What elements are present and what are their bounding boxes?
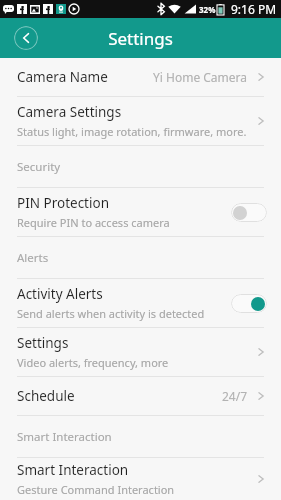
staticText: Smart Interaction xyxy=(17,429,112,445)
button[interactable]: Back xyxy=(14,26,38,50)
staticText: Video alerts, frequency, more xyxy=(17,355,169,370)
staticText: 32% xyxy=(199,4,216,15)
staticText: Status light, image rotation, firmware, … xyxy=(17,124,247,139)
button[interactable]: Toggle off xyxy=(231,203,267,222)
button[interactable]: Camera Name xyxy=(0,58,281,96)
staticText: Settings xyxy=(17,334,69,352)
staticText: Security xyxy=(17,159,61,175)
button[interactable]: PIN Protection xyxy=(0,188,281,236)
staticText: Schedule xyxy=(17,387,75,405)
staticText: Yi Home Camera xyxy=(153,69,248,85)
button[interactable]: Smart Interaction xyxy=(0,458,281,500)
staticText: Camera Name xyxy=(17,68,108,86)
staticText: Activity Alerts xyxy=(17,285,103,303)
staticText: Alerts xyxy=(17,250,49,266)
staticText: Send alerts when activity is detected xyxy=(17,306,205,321)
button[interactable]: Schedule xyxy=(0,377,281,415)
staticText: Camera Settings xyxy=(17,103,122,121)
staticText: 9:16 PM xyxy=(231,1,277,17)
staticText: 24/7 xyxy=(222,388,248,404)
staticText: Smart Interaction xyxy=(17,461,129,479)
staticText: Settings xyxy=(108,27,173,50)
staticText: Require PIN to access camera xyxy=(17,215,170,230)
button[interactable]: Settings xyxy=(0,328,281,376)
staticText: PIN Protection xyxy=(17,194,109,212)
button[interactable]: Toggle on xyxy=(231,294,267,313)
button[interactable]: Camera Settings xyxy=(0,97,281,145)
button[interactable]: Activity Alerts xyxy=(0,279,281,327)
staticText: Gesture Command Interaction xyxy=(17,482,175,497)
